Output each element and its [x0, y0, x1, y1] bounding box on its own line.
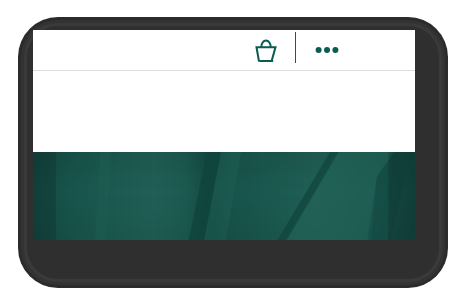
button[interactable]: Shopping bag — [244, 30, 288, 70]
button[interactable]: More options — [305, 30, 349, 70]
